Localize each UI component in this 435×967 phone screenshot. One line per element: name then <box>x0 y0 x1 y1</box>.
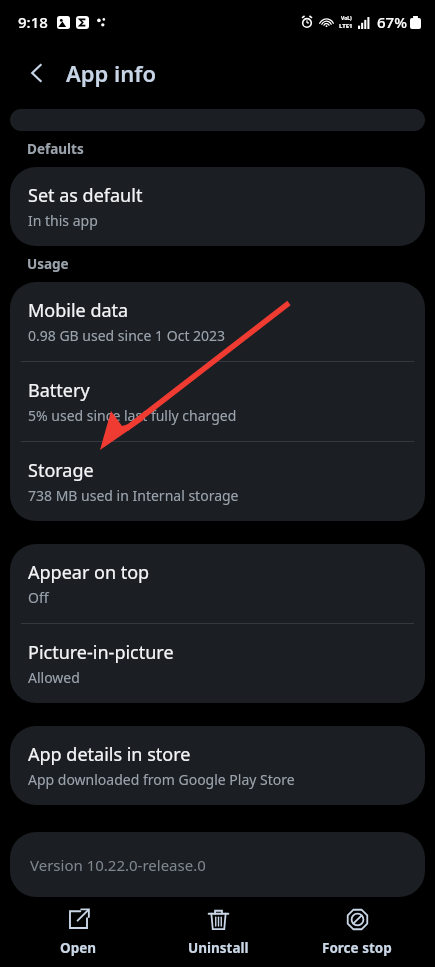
staticText: Appear on top <box>28 560 150 585</box>
staticText: In this app <box>28 211 98 230</box>
staticText: 9:18 <box>18 12 48 32</box>
button[interactable]: Mobile data <box>10 282 425 361</box>
staticText: Off <box>28 588 49 607</box>
staticText: Open <box>60 939 97 957</box>
staticText: Picture-in-picture <box>28 640 174 665</box>
button[interactable] <box>10 109 425 131</box>
button[interactable]: Set as default <box>10 167 425 246</box>
staticText: Storage <box>28 458 94 483</box>
staticText: Version 10.22.0-release.0 <box>30 855 206 875</box>
staticText: 0.98 GB used since 1 Oct 2023 <box>28 326 226 345</box>
staticText: Force stop <box>322 939 392 957</box>
staticText: Battery <box>28 378 90 403</box>
staticText: LTE1 <box>339 22 353 30</box>
button[interactable]: Appear on top <box>10 544 425 623</box>
staticText: App info <box>66 58 157 88</box>
staticText: Set as default <box>28 183 143 208</box>
staticText: Defaults <box>27 140 84 158</box>
button[interactable]: Open <box>16 902 140 963</box>
button[interactable]: Back <box>20 56 54 90</box>
button[interactable]: Storage <box>10 442 425 521</box>
button[interactable]: Uninstall <box>156 902 280 963</box>
button[interactable]: Picture-in-picture <box>10 624 425 703</box>
staticText: Usage <box>27 255 69 273</box>
staticText: 5% used since last fully charged <box>28 406 237 425</box>
staticText: Allowed <box>28 668 80 687</box>
staticText: VoL) <box>341 15 352 22</box>
button[interactable]: App details in store <box>10 726 425 805</box>
staticText: 67% <box>377 12 407 32</box>
staticText: 738 MB used in Internal storage <box>28 486 239 505</box>
button[interactable]: Force stop <box>295 902 419 963</box>
staticText: Mobile data <box>28 298 129 323</box>
button[interactable]: Battery <box>10 362 425 441</box>
staticText: Uninstall <box>188 939 249 957</box>
staticText: App downloaded from Google Play Store <box>28 770 295 789</box>
staticText: App details in store <box>28 742 191 767</box>
